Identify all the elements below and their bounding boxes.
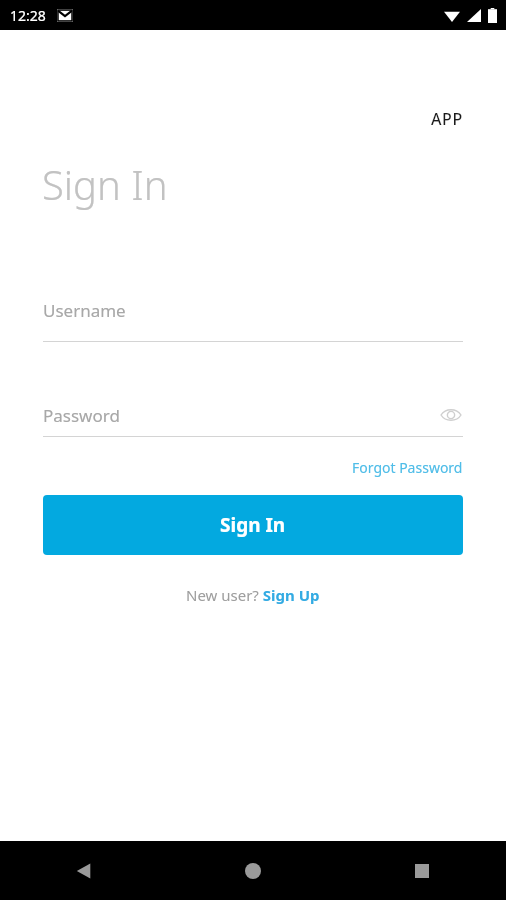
button[interactable]: Show password: [439, 403, 463, 427]
staticText: APP: [431, 108, 463, 130]
button[interactable]: New user? Sign Up: [180, 579, 326, 611]
staticText: 12:28: [10, 6, 46, 25]
staticText: Forgot Password: [352, 458, 463, 477]
staticText: New user? Sign Up: [186, 585, 320, 605]
staticText: Username: [43, 299, 126, 322]
button[interactable]: Back: [0, 841, 168, 900]
button[interactable]: Recents: [337, 841, 506, 900]
staticText: Sign In: [220, 512, 286, 538]
staticText: Password: [43, 404, 120, 427]
button[interactable]: APP: [0, 108, 506, 130]
button[interactable]: Sign In: [43, 495, 463, 555]
staticText: Sign In: [42, 157, 168, 211]
button[interactable]: Password: [43, 403, 463, 427]
button[interactable]: Home: [168, 841, 337, 900]
button[interactable]: Username: [43, 299, 463, 342]
button[interactable]: Forgot Password: [352, 458, 506, 477]
